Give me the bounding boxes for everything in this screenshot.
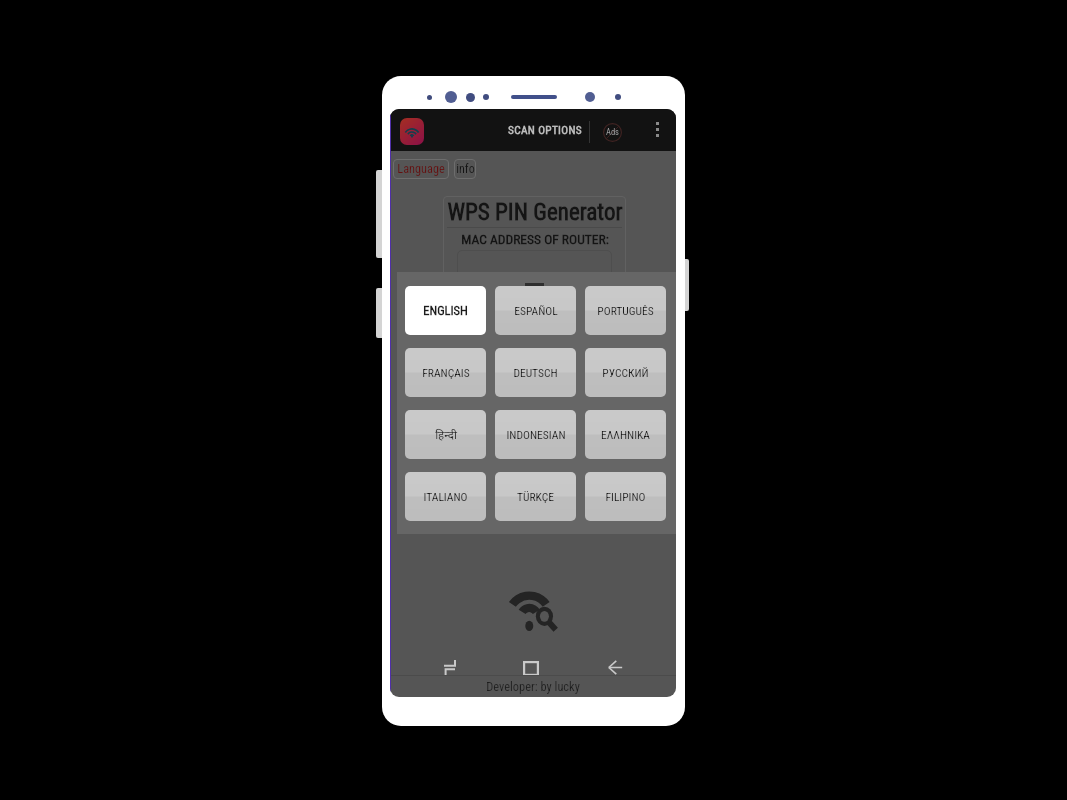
button[interactable]: FRANÇAIS xyxy=(405,348,486,397)
staticText: DEUTSCH xyxy=(513,366,558,379)
staticText: ΕΛΛΗΝΙΚΑ xyxy=(601,428,650,441)
staticText: TÜRKÇE xyxy=(517,490,554,503)
button[interactable]: PORTUGUÊS xyxy=(585,286,666,335)
staticText: Developer: by lucky xyxy=(486,679,580,694)
button[interactable]: SCAN OPTIONS xyxy=(508,120,581,141)
button[interactable]: ESPAÑOL xyxy=(495,286,576,335)
button[interactable]: Remove ads xyxy=(602,122,622,142)
button[interactable]: Back xyxy=(600,652,630,682)
button[interactable]: FILIPINO xyxy=(585,472,666,521)
button[interactable]: TÜRKÇE xyxy=(495,472,576,521)
staticText: Language xyxy=(397,162,445,176)
staticText: PORTUGUÊS xyxy=(597,304,654,317)
staticText: INDONESIAN xyxy=(506,428,566,441)
button[interactable]: info xyxy=(454,159,476,179)
staticText: info xyxy=(456,162,475,176)
staticText: ENGLISH xyxy=(423,303,468,318)
staticText: РУССКИЙ xyxy=(602,366,649,379)
staticText: हिन्दी xyxy=(435,427,457,443)
staticText: SCAN OPTIONS xyxy=(508,124,582,137)
button[interactable]: हिन्दी xyxy=(405,410,486,459)
staticText: WPS PIN Generator xyxy=(447,199,623,226)
button[interactable]: ITALIANO xyxy=(405,472,486,521)
button[interactable]: Language xyxy=(393,159,449,179)
button[interactable]: ΕΛΛΗΝΙΚΑ xyxy=(585,410,666,459)
staticText: Ads xyxy=(606,127,619,137)
staticText: ITALIANO xyxy=(423,490,468,503)
button[interactable]: DEUTSCH xyxy=(495,348,576,397)
button[interactable]: РУССКИЙ xyxy=(585,348,666,397)
staticText: MAC ADDRESS OF ROUTER: xyxy=(461,231,609,247)
button[interactable]: App icon xyxy=(400,118,424,145)
staticText: FILIPINO xyxy=(605,490,646,503)
staticText: ESPAÑOL xyxy=(514,304,558,317)
button[interactable]: Home xyxy=(516,653,546,683)
button[interactable]: INDONESIAN xyxy=(495,410,576,459)
button[interactable]: Recents xyxy=(434,652,464,682)
button[interactable]: ENGLISH xyxy=(405,286,486,335)
button[interactable]: More options xyxy=(652,122,662,140)
staticText: FRANÇAIS xyxy=(422,366,470,379)
